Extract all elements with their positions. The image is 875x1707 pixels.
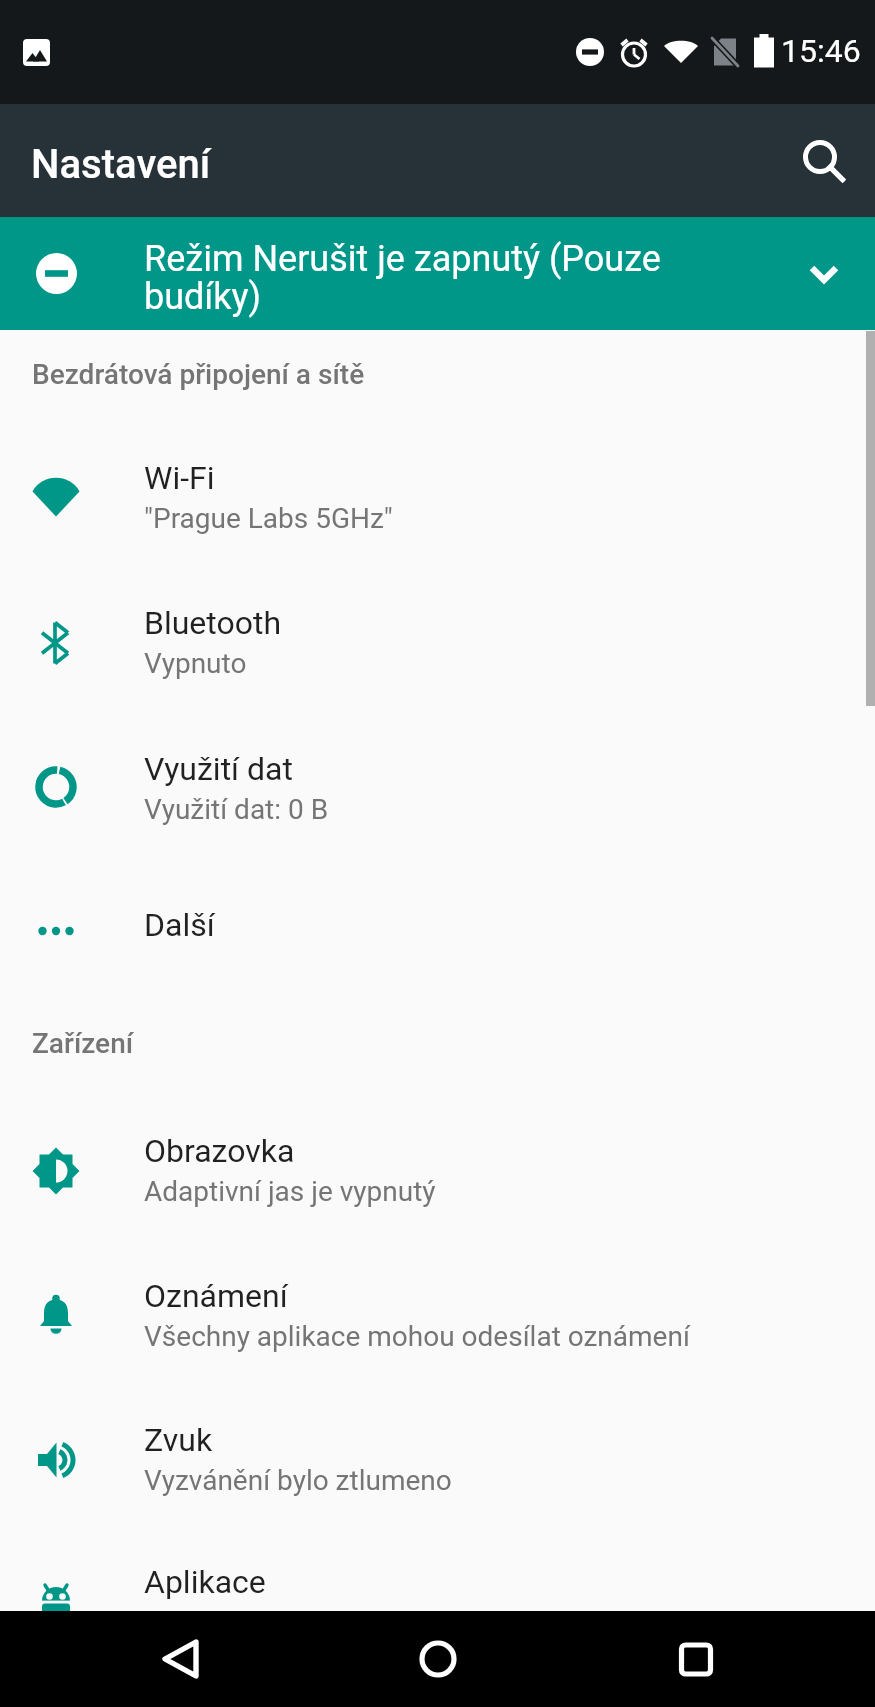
staticText: Využití dat <box>144 750 293 788</box>
button[interactable]: Další <box>0 853 875 997</box>
button[interactable]: Využití dat <box>0 717 875 861</box>
staticText: Aplikace <box>144 1563 266 1601</box>
button[interactable]: Back <box>132 1611 228 1707</box>
button[interactable]: Bluetooth <box>0 571 875 715</box>
staticText: Bluetooth <box>144 604 282 642</box>
staticText: Režim Nerušit je zapnutý (Pouze budíky) <box>144 238 685 318</box>
button[interactable]: Search <box>795 132 853 190</box>
staticText: Další <box>144 906 215 944</box>
button[interactable]: Expand do not disturb banner <box>795 245 853 303</box>
staticText: Zařízení <box>32 1027 134 1060</box>
staticText: 15:46 <box>781 32 861 70</box>
staticText: Nastavení <box>31 141 211 188</box>
button[interactable]: Zvuk <box>0 1388 875 1532</box>
button[interactable]: Home <box>390 1611 486 1707</box>
staticText: Vyzvánění bylo ztlumeno <box>144 1464 452 1497</box>
staticText: Adaptivní jas je vypnutý <box>144 1175 436 1208</box>
staticText: Wi-Fi <box>144 459 215 497</box>
staticText: Vypnuto <box>144 647 247 680</box>
button[interactable]: Recent apps <box>648 1611 744 1707</box>
staticText: "Prague Labs 5GHz" <box>144 502 393 535</box>
staticText: Zvuk <box>144 1421 213 1459</box>
button[interactable]: Wi-Fi <box>0 426 875 570</box>
button[interactable]: Oznámení <box>0 1244 875 1388</box>
button[interactable]: Aplikace <box>0 1530 875 1674</box>
staticText: Obrazovka <box>144 1132 295 1170</box>
button[interactable]: Obrazovka <box>0 1099 875 1243</box>
staticText: Využití dat: 0 B <box>144 793 329 826</box>
staticText: Bezdrátová připojení a sítě <box>32 358 365 391</box>
staticText: Nainstalováno 29 aplikací <box>144 1606 464 1639</box>
staticText: Oznámení <box>144 1277 288 1315</box>
staticText: Všechny aplikace mohou odesílat oznámení <box>144 1320 690 1353</box>
button[interactable]: Režim Nerušit je zapnutý (Pouze budíky) <box>0 217 875 330</box>
